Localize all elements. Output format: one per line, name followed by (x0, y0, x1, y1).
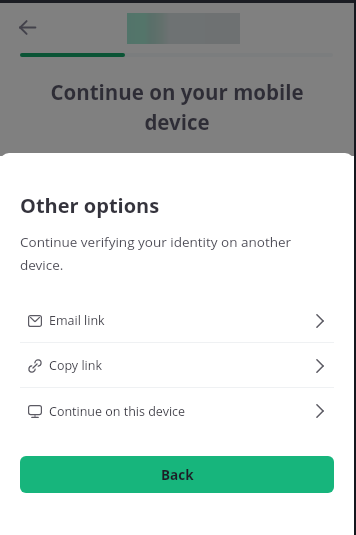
staticText: Other options (20, 192, 160, 219)
staticText: Continue verifying your identity on anot… (20, 233, 302, 274)
staticText: Back (161, 466, 194, 484)
button[interactable]: Copy link (0, 343, 354, 388)
staticText: Copy link (49, 357, 102, 374)
button[interactable]: Email link (0, 298, 354, 343)
staticText: Continue on your mobile device (30, 78, 324, 136)
staticText: Email link (49, 312, 105, 329)
button[interactable]: Back (20, 456, 334, 493)
button[interactable]: Back (19, 19, 36, 36)
button[interactable]: Continue on this device (0, 388, 354, 434)
staticText: Continue on this device (49, 403, 186, 420)
